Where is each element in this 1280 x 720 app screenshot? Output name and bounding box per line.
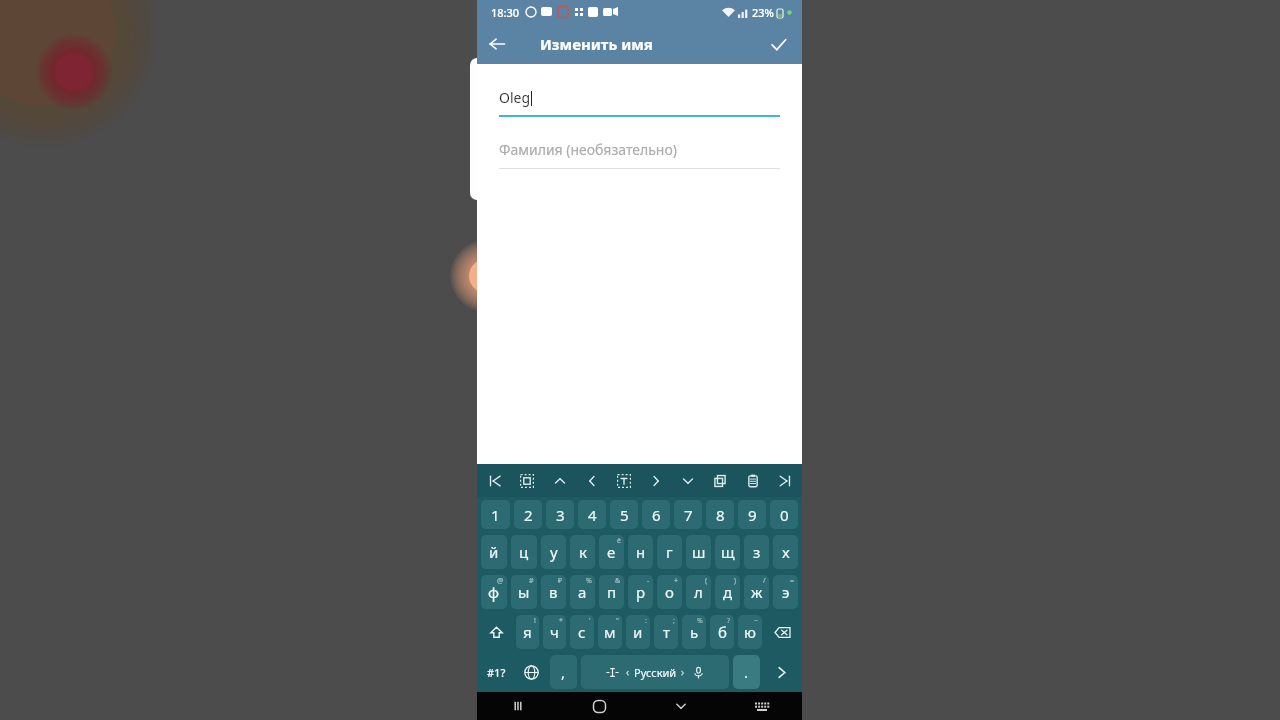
button[interactable]: а — [570, 575, 595, 609]
button[interactable]: Oleg — [499, 88, 780, 117]
button[interactable]: щ — [715, 535, 740, 569]
button[interactable]: Enter — [762, 655, 800, 689]
button[interactable]: . — [733, 655, 760, 689]
staticText: 9 — [748, 505, 757, 525]
staticText: - — [647, 576, 650, 586]
staticText: ы — [518, 582, 530, 602]
button[interactable]: 7 — [674, 500, 702, 529]
staticText: о — [665, 582, 674, 602]
button[interactable]: Copy — [705, 466, 734, 495]
staticText: 18:30 — [491, 5, 520, 20]
button[interactable]: ф — [481, 575, 507, 609]
button[interactable]: Home — [559, 692, 640, 720]
button[interactable]: Change language — [514, 655, 548, 689]
button[interactable]: 1 — [481, 500, 510, 529]
button[interactable]: у — [541, 535, 566, 569]
button[interactable]: ш — [686, 535, 711, 569]
staticText: г — [666, 542, 673, 562]
staticText: ₽ — [558, 576, 563, 586]
button[interactable]: , — [550, 655, 577, 689]
button[interactable]: м — [598, 615, 622, 649]
button[interactable]: 4 — [578, 500, 606, 529]
staticText: д — [723, 582, 733, 602]
button[interactable]: Move to start — [480, 466, 509, 495]
button[interactable]: Select all — [512, 466, 541, 495]
staticText: 1 — [491, 505, 500, 525]
button[interactable]: Keyboard settings — [721, 692, 802, 720]
button[interactable]: Clipboard — [738, 466, 767, 495]
staticText: ; — [673, 616, 675, 626]
button[interactable]: я — [516, 615, 539, 649]
staticText: ! — [534, 616, 536, 626]
button[interactable]: и — [626, 615, 650, 649]
button[interactable]: х — [773, 535, 798, 569]
staticText: к — [579, 542, 587, 562]
button[interactable]: Shift — [481, 615, 512, 649]
staticText: с — [578, 622, 586, 642]
button[interactable]: й — [481, 535, 507, 569]
button[interactable]: Move down — [673, 466, 702, 495]
button[interactable]: г — [657, 535, 682, 569]
staticText: # — [529, 576, 534, 586]
button[interactable]: Space — [581, 655, 729, 689]
staticText: ц — [519, 542, 529, 562]
button[interactable]: Move to end — [770, 466, 799, 495]
button[interactable]: Recents — [477, 692, 559, 720]
button[interactable]: Фамилия (необязательно) — [499, 140, 780, 169]
button[interactable]: 5 — [610, 500, 638, 529]
staticText: е — [607, 542, 616, 562]
button[interactable]: к — [570, 535, 595, 569]
button[interactable]: Done — [760, 26, 796, 62]
staticText: т — [663, 622, 670, 642]
button[interactable]: ю — [738, 615, 762, 649]
button[interactable]: о — [657, 575, 682, 609]
staticText: #1? — [487, 665, 506, 680]
button[interactable]: Move right — [641, 466, 670, 495]
button[interactable]: ц — [511, 535, 537, 569]
button[interactable]: Back — [477, 24, 517, 64]
staticText: / — [763, 576, 766, 586]
staticText: в — [549, 582, 558, 602]
button[interactable]: ч — [543, 615, 566, 649]
button[interactable]: 8 — [706, 500, 734, 529]
staticText: : — [645, 616, 647, 626]
staticText: Изменить имя — [540, 34, 653, 54]
button[interactable]: 9 — [738, 500, 766, 529]
button[interactable]: с — [570, 615, 594, 649]
button[interactable]: Select text — [609, 466, 638, 495]
button[interactable]: т — [654, 615, 678, 649]
button[interactable]: Hide keyboard — [640, 692, 721, 720]
button[interactable]: д — [715, 575, 740, 609]
button[interactable]: в — [541, 575, 566, 609]
staticText: * — [559, 616, 563, 626]
staticText: з — [753, 542, 761, 562]
staticText: Русский — [634, 665, 677, 680]
button[interactable]: #1? — [479, 655, 514, 689]
button[interactable]: р — [628, 575, 653, 609]
staticText: 2 — [524, 505, 533, 525]
staticText: ь — [690, 622, 699, 642]
button[interactable]: б — [710, 615, 734, 649]
button[interactable]: 0 — [770, 500, 798, 529]
button[interactable]: Move up — [545, 466, 574, 495]
button[interactable]: ж — [744, 575, 769, 609]
button[interactable]: 3 — [546, 500, 574, 529]
button[interactable]: е — [599, 535, 624, 569]
button[interactable]: н — [628, 535, 653, 569]
button[interactable]: э — [773, 575, 798, 609]
staticText: ' — [589, 616, 591, 626]
button[interactable]: Backspace — [766, 615, 798, 649]
staticText: р — [636, 582, 646, 602]
staticText: й — [489, 542, 499, 562]
button[interactable]: 6 — [642, 500, 670, 529]
button[interactable]: 2 — [514, 500, 542, 529]
button[interactable]: з — [744, 535, 769, 569]
button[interactable]: ь — [682, 615, 706, 649]
staticText: ж — [751, 582, 763, 602]
button[interactable]: ы — [511, 575, 537, 609]
button[interactable]: л — [686, 575, 711, 609]
staticText: б — [718, 622, 727, 642]
staticText: , — [561, 662, 566, 682]
button[interactable]: п — [599, 575, 624, 609]
button[interactable]: Move left — [577, 466, 606, 495]
